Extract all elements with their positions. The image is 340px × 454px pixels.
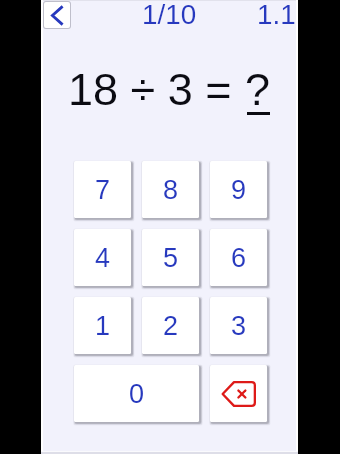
button[interactable]: 8: [142, 161, 199, 218]
button[interactable]: 1: [74, 297, 131, 354]
staticText: 1.1: [257, 0, 296, 30]
staticText: 3: [231, 311, 247, 341]
button[interactable]: 3: [210, 297, 267, 354]
staticText: 1: [95, 311, 111, 341]
staticText: 7: [95, 175, 111, 205]
staticText: 0: [129, 379, 145, 409]
staticText: 18 ÷ 3 =: [68, 64, 245, 114]
staticText: ?: [245, 64, 271, 114]
button[interactable]: 4: [74, 229, 131, 286]
staticText: 9: [231, 175, 247, 205]
button[interactable]: 2: [142, 297, 199, 354]
button[interactable]: Backspace: [210, 365, 267, 422]
button[interactable]: 7: [74, 161, 131, 218]
button[interactable]: 5: [142, 229, 199, 286]
staticText: 8: [163, 175, 179, 205]
button[interactable]: 6: [210, 229, 267, 286]
staticText: 1/10: [142, 0, 197, 30]
button[interactable]: 0: [74, 365, 199, 422]
button[interactable]: Back: [44, 2, 70, 28]
staticText: 5: [163, 243, 179, 273]
staticText: 6: [231, 243, 247, 273]
staticText: 4: [95, 243, 111, 273]
button[interactable]: 9: [210, 161, 267, 218]
staticText: 2: [163, 311, 179, 341]
